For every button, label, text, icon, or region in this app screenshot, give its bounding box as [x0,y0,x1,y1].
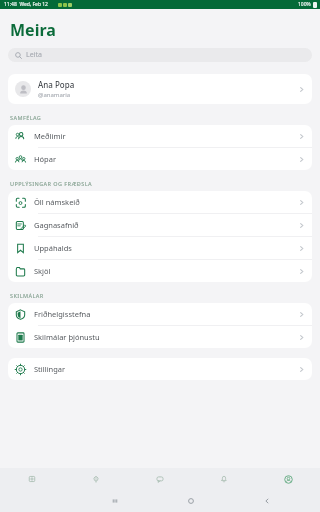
button[interactable]: Messages [128,468,192,490]
button[interactable]: Skilmálar þjónustu [8,326,312,348]
staticText: Skilmálar þjónustu [34,332,100,342]
staticText: Öll námskeið [34,197,80,207]
button[interactable]: Stillingar [8,358,312,380]
staticText: Meðlimir [34,131,66,141]
staticText: Skjöl [34,266,51,276]
button[interactable]: Explore [64,468,128,490]
staticText: SKILMÁLAR [10,292,44,299]
button[interactable]: Friðhelgisstefna [8,303,312,325]
staticText: Uppáhalds [34,243,72,253]
button[interactable]: More [256,468,320,490]
staticText: Friðhelgisstefna [34,309,91,319]
button[interactable]: Skjöl [8,260,312,282]
button[interactable]: Meðlimir [8,125,312,147]
button[interactable]: Leita [8,48,312,62]
staticText: Leita [26,50,42,60]
button[interactable]: Home [0,468,64,490]
button[interactable]: Gagnasafnið [8,214,312,236]
button[interactable]: Uppáhalds [8,237,312,259]
staticText: @anamaria [38,91,71,99]
button[interactable]: Ana Popa [8,74,312,104]
button[interactable]: Öll námskeið [8,191,312,213]
staticText: Gagnasafnið [34,220,79,230]
staticText: SAMFÉLAG [10,114,42,121]
staticText: Stillingar [34,364,66,374]
staticText: 11:48 Wed, Feb 12 [4,1,48,8]
staticText: Meira [10,19,56,41]
button[interactable]: Notifications [192,468,256,490]
staticText: 100% [298,1,311,8]
button[interactable]: Hópar [8,148,312,170]
staticText: UPPLÝSINGAR OG FRÆÐSLA [10,180,92,187]
staticText: Hópar [34,154,57,164]
staticText: Ana Popa [38,79,75,90]
